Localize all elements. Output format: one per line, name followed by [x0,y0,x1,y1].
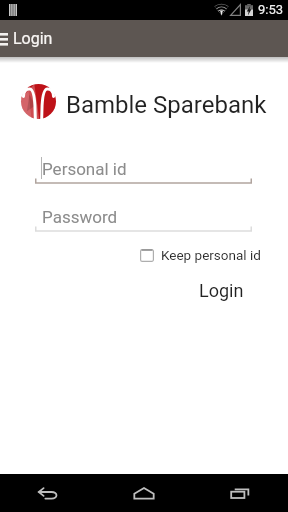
staticText: Bamble Sparebank [66,91,267,119]
button[interactable]: Open navigation drawer [0,20,13,57]
button[interactable]: Home [96,474,192,512]
button[interactable]: Back [0,474,96,512]
staticText: Password [42,207,118,227]
button[interactable]: Recent apps [192,474,288,512]
button[interactable]: Keep personal id [135,243,266,267]
staticText: Keep personal id [161,247,261,263]
staticText: 9:53 [258,2,284,17]
button[interactable] [35,205,252,231]
staticText: Login [199,280,244,301]
staticText: Personal id [42,159,127,179]
button[interactable]: Login [191,275,252,306]
staticText: Login [13,29,53,48]
button[interactable] [35,157,252,183]
